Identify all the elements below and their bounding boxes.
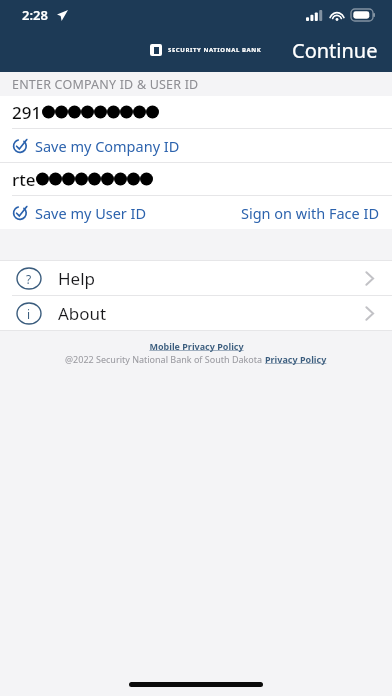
staticText: 2:28 bbox=[22, 6, 48, 24]
staticText: ENTER COMPANY ID & USER ID bbox=[12, 76, 199, 93]
button[interactable]: Sign on with Face ID bbox=[241, 203, 380, 223]
button[interactable]: rte bbox=[0, 163, 392, 195]
button[interactable]: Save my Company ID bbox=[0, 129, 392, 162]
staticText: Continue bbox=[292, 37, 378, 64]
staticText: Save my User ID bbox=[35, 203, 147, 223]
staticText: i bbox=[27, 306, 31, 322]
staticText: Sign on with Face ID bbox=[241, 203, 380, 223]
button[interactable]: 291 bbox=[0, 96, 392, 128]
button[interactable]: i bbox=[0, 296, 392, 330]
button[interactable]: Mobile Privacy Policy bbox=[149, 340, 244, 352]
staticText: 291 bbox=[12, 101, 42, 124]
staticText: @2022 Security National Bank of South Da… bbox=[65, 353, 265, 365]
staticText: SECURITY NATIONAL BANK bbox=[168, 46, 262, 54]
button[interactable]: Save my User ID bbox=[0, 196, 392, 229]
button[interactable]: Continue bbox=[278, 29, 392, 72]
staticText: About bbox=[58, 302, 107, 325]
staticText: Save my Company ID bbox=[35, 136, 180, 156]
button[interactable]: ? bbox=[0, 261, 392, 295]
staticText: Help bbox=[58, 267, 96, 290]
staticText: rte bbox=[12, 168, 36, 191]
button[interactable]: Privacy Policy bbox=[265, 353, 327, 365]
staticText: ? bbox=[26, 271, 32, 287]
